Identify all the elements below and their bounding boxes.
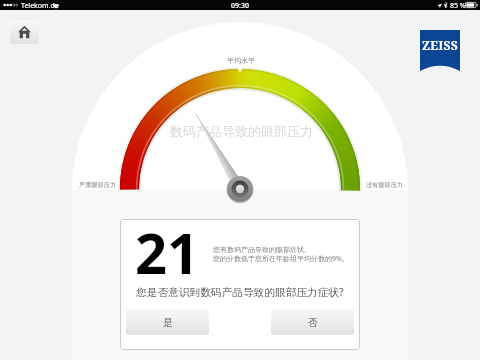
staticText: 09:30	[231, 1, 249, 11]
button[interactable]: 否	[271, 309, 354, 335]
staticText: 平均水平	[227, 56, 255, 65]
staticText: 是	[163, 316, 173, 329]
staticText: 严重眼部压力	[79, 181, 117, 189]
staticText: 您是否意识到数码产品导致的眼部压力症状?	[136, 285, 344, 300]
staticText: 21	[135, 219, 200, 290]
staticText: 否	[308, 316, 318, 329]
staticText: 没有眼部压力	[366, 181, 404, 189]
staticText: 85 %	[450, 1, 466, 11]
staticText: 您的分数低于您所在年龄组平均分数的9%。	[213, 254, 349, 264]
staticText: ZEISS	[422, 37, 459, 53]
button[interactable]: Home	[10, 20, 39, 44]
staticText: 数码产品导致的眼部压力	[170, 123, 313, 139]
staticText: Telekom.de	[21, 1, 59, 11]
staticText: 您有数码产品导致的眼部症状。	[213, 245, 311, 254]
button[interactable]: 是	[126, 309, 209, 335]
